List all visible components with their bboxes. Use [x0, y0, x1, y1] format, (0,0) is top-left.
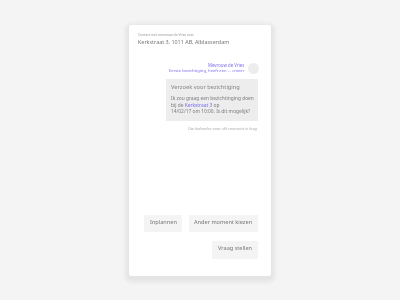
button[interactable]: Mevrouw de Vries [129, 62, 245, 74]
staticText: Mevrouw de Vries [208, 62, 245, 68]
button[interactable]: Inplannen [144, 215, 182, 232]
staticText: Verzoek voor bezichtiging [171, 83, 240, 91]
staticText: Eerste bezichtiging, heeft een ... «meer [169, 68, 245, 74]
staticText: Inplannen [150, 218, 177, 226]
staticText: Uw kalender voor dit moment is leeg [129, 125, 257, 131]
staticText: Ik zou graag een bezichtinging doen bij … [171, 95, 254, 114]
staticText: Vraag stellen [218, 244, 253, 252]
button[interactable]: Profielfoto mevrouw de Vries [248, 63, 259, 74]
button[interactable]: Vraag stellen [212, 241, 258, 259]
button[interactable]: Ander moment kiezen [189, 215, 258, 232]
staticText: Kerkstraat 3, 1011 AB, Alblasserdam [138, 38, 230, 45]
staticText: Contact met mevrouw de Vries over [138, 32, 194, 37]
staticText: Ander moment kiezen [194, 218, 253, 226]
